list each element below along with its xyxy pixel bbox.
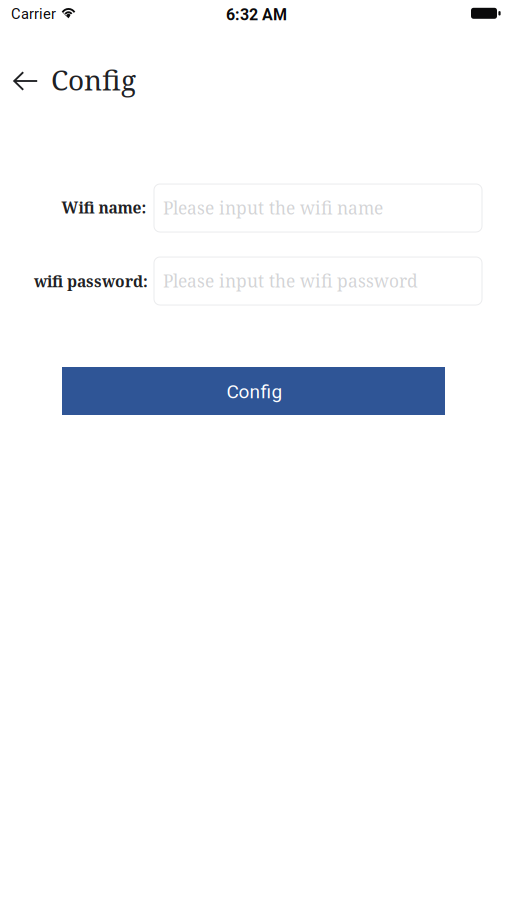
staticText: Config [51, 61, 136, 99]
button[interactable]: Back [0, 58, 51, 104]
staticText: 6:32 AM [226, 5, 287, 24]
staticText: Carrier [11, 5, 56, 23]
staticText: Please input the wifi name [163, 196, 383, 220]
staticText: Config [226, 380, 282, 403]
staticText: Please input the wifi password [163, 269, 418, 293]
button[interactable]: Config [62, 367, 445, 415]
button[interactable]: Please input the wifi password [154, 257, 482, 305]
button[interactable]: Please input the wifi name [154, 184, 482, 232]
staticText: wifi password: [34, 271, 148, 292]
staticText: Wifi name: [61, 197, 146, 218]
